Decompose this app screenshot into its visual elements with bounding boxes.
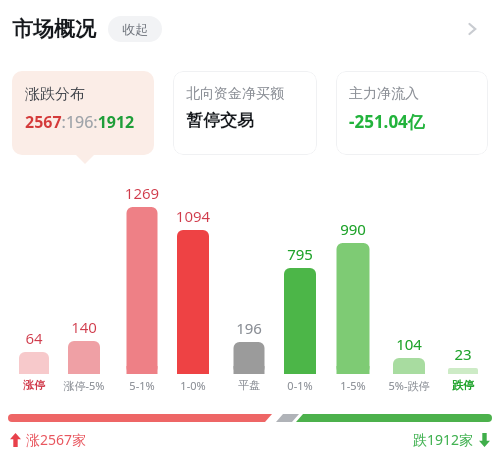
staticText: 23 <box>433 344 493 364</box>
button[interactable]: 涨跌分布 <box>12 71 154 155</box>
staticText: 1269 <box>112 183 172 203</box>
staticText: 64 <box>4 328 64 348</box>
staticText: 140 <box>54 317 114 337</box>
staticText: 暂停交易 <box>186 110 254 131</box>
button[interactable]: 北向资金净买额 <box>173 71 317 155</box>
staticText: 5-1% <box>108 378 176 393</box>
staticText: 涨停 <box>0 378 68 392</box>
staticText: 跌1912家 <box>413 430 474 449</box>
staticText: 北向资金净买额 <box>186 85 284 103</box>
staticText: 5%-跌停 <box>375 378 443 393</box>
button[interactable]: 收起 <box>108 16 162 42</box>
staticText: 2567:196:1912 <box>25 111 135 133</box>
staticText: 跌停 <box>429 378 497 392</box>
staticText: 市场概况 <box>12 16 96 42</box>
staticText: 1-5% <box>319 378 387 393</box>
staticText: 104 <box>379 334 439 354</box>
staticText: 196 <box>219 318 279 338</box>
staticText: 涨2567家 <box>26 430 87 449</box>
staticText: 990 <box>323 219 383 239</box>
staticText: 平盘 <box>215 378 283 392</box>
staticText: 主力净流入 <box>349 85 419 103</box>
staticText: 1094 <box>163 206 223 226</box>
button[interactable]: 更多 <box>450 7 494 51</box>
staticText: 1-0% <box>159 378 227 393</box>
staticText: 涨停-5% <box>50 378 118 393</box>
button[interactable]: 主力净流入 <box>336 71 488 155</box>
button[interactable]: 跌1912家 <box>413 430 490 449</box>
staticText: -251.04亿 <box>349 110 425 133</box>
staticText: 涨跌分布 <box>25 85 85 104</box>
staticText: 795 <box>270 244 330 264</box>
staticText: 收起 <box>122 21 148 37</box>
staticText: 0-1% <box>266 378 334 393</box>
button[interactable]: 涨2567家 <box>10 430 87 449</box>
